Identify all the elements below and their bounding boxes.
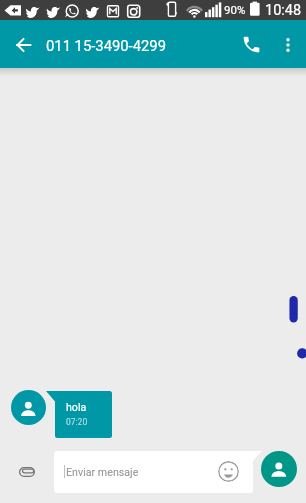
button[interactable]: Call	[236, 29, 267, 60]
staticText: 011 15-3490-4299	[46, 37, 166, 54]
button[interactable]: Attach	[11, 456, 43, 488]
button[interactable]: Emoji	[218, 461, 239, 482]
button[interactable]: More options	[272, 29, 303, 60]
staticText: hola	[66, 401, 87, 413]
staticText: 90%	[224, 3, 246, 16]
button[interactable]: hola	[46, 391, 112, 438]
button[interactable]: Contact avatar	[11, 390, 46, 425]
button[interactable]: Enviar mensaje	[54, 451, 262, 493]
staticText: 10:48	[265, 2, 302, 19]
staticText: Enviar mensaje	[66, 466, 139, 479]
staticText: 07:20	[66, 417, 88, 427]
button[interactable]: Back	[8, 29, 39, 60]
button[interactable]: Send contact	[261, 451, 297, 487]
